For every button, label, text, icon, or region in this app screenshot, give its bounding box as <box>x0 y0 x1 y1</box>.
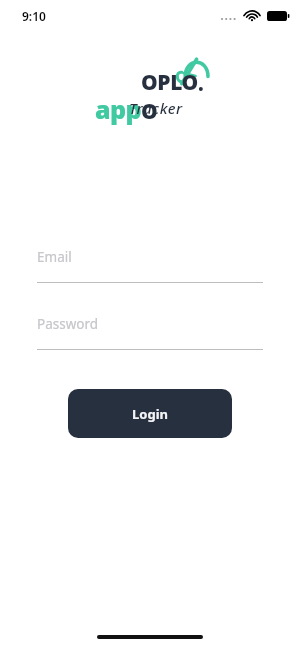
button[interactable]: Login <box>68 389 232 438</box>
button[interactable]: Email <box>37 244 263 283</box>
staticText: Login <box>132 405 168 423</box>
staticText: Tracker <box>129 98 183 118</box>
staticText: Password <box>37 315 99 333</box>
staticText: Email <box>37 248 72 266</box>
staticText: 9:10 <box>22 8 46 24</box>
button[interactable]: Password <box>37 311 263 350</box>
staticText: app <box>95 92 141 126</box>
staticText: OPLOO <box>141 68 205 126</box>
